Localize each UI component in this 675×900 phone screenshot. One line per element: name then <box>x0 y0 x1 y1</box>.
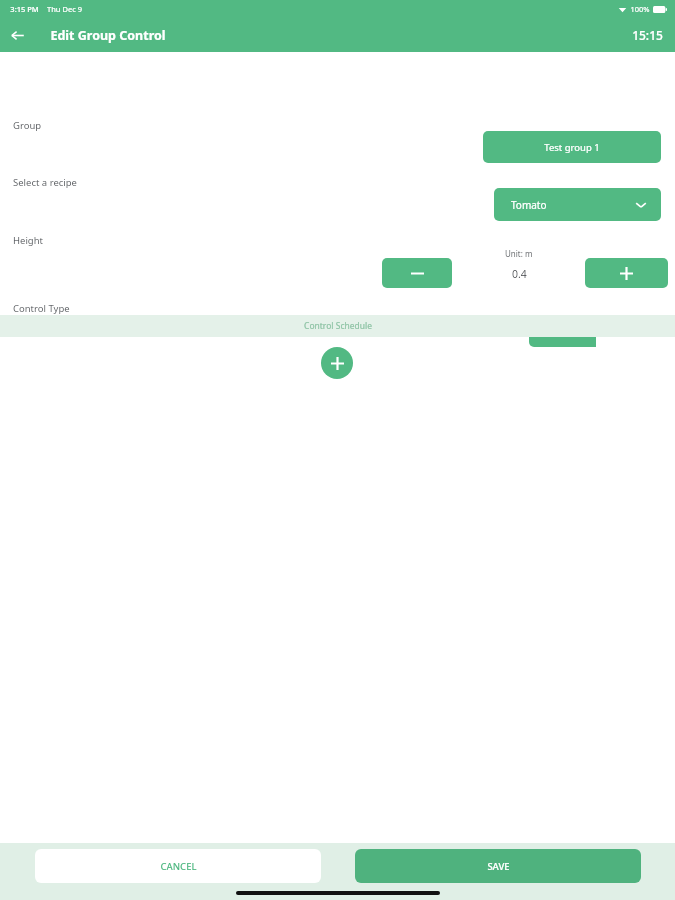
staticText: Control Schedule <box>304 320 372 332</box>
button[interactable]: Decrease height <box>382 258 452 288</box>
button[interactable]: MANUAL <box>596 316 662 347</box>
button[interactable]: Increase height <box>585 258 668 288</box>
staticText: 3:15 PM <box>10 4 39 14</box>
staticText: Unit: m <box>505 248 533 259</box>
button[interactable]: SCHEDULE <box>529 316 596 347</box>
staticText: Thu Dec 9 <box>47 4 82 14</box>
staticText: Edit Group Control <box>50 27 166 44</box>
button[interactable]: Back <box>0 18 34 52</box>
staticText: Select a recipe <box>13 176 77 189</box>
staticText: Group <box>13 119 42 132</box>
staticText: CANCEL <box>160 860 197 873</box>
staticText: MANUAL <box>611 326 648 338</box>
staticText: SCHEDULE <box>541 326 584 338</box>
staticText: 100% <box>630 4 650 14</box>
staticText: SAVE <box>487 860 510 873</box>
staticText: Control Type <box>13 302 70 315</box>
button[interactable]: CANCEL <box>35 849 321 883</box>
staticText: Height <box>13 234 43 247</box>
button[interactable]: Test group 1 <box>483 131 661 163</box>
staticText: 15:15 <box>632 27 663 43</box>
staticText: Test group 1 <box>544 141 600 154</box>
button[interactable]: Add schedule <box>321 347 353 379</box>
staticText: 0.4 <box>512 267 527 281</box>
staticText: Tomato <box>511 198 547 212</box>
button[interactable]: Tomato <box>494 188 661 221</box>
button[interactable]: SAVE <box>355 849 641 883</box>
